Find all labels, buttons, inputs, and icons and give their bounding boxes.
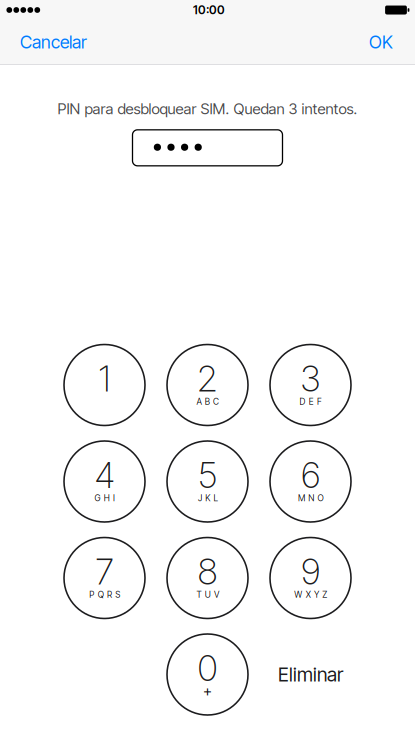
button[interactable]: 5	[167, 441, 248, 522]
staticText: TUV	[196, 589, 219, 600]
staticText: 6	[300, 453, 320, 497]
staticText: 0	[197, 646, 218, 690]
staticText: 1	[98, 357, 111, 400]
staticText: 7	[95, 550, 114, 593]
staticText: ABC	[196, 396, 219, 407]
staticText: OK	[369, 31, 393, 53]
button[interactable]: Cancelar	[0, 20, 107, 64]
staticText: 4	[94, 453, 115, 497]
button[interactable]: Eliminar	[270, 634, 351, 715]
staticText: 5	[197, 453, 217, 497]
button[interactable]: 0	[167, 634, 248, 715]
staticText: GHI	[94, 493, 115, 503]
staticText: +	[203, 682, 212, 700]
button[interactable]: 1	[64, 344, 145, 425]
button[interactable]: 4	[64, 441, 145, 522]
staticText: JKL	[198, 493, 218, 503]
staticText: WXYZ	[294, 589, 327, 600]
button[interactable]: 9	[270, 537, 351, 618]
button[interactable]: 6	[270, 441, 351, 522]
button[interactable]: 2	[167, 344, 248, 425]
staticText: 10:00	[193, 3, 225, 17]
staticText: Cancelar	[20, 31, 87, 53]
staticText: DEF	[299, 396, 322, 407]
button[interactable]: 3	[270, 344, 351, 425]
staticText: PQRS	[89, 589, 120, 600]
button[interactable]: 8	[167, 537, 248, 618]
staticText: 3	[299, 357, 321, 400]
staticText: Eliminar	[278, 663, 343, 686]
staticText: 9	[300, 550, 320, 593]
staticText: 8	[197, 550, 218, 593]
staticText: MNO	[298, 493, 324, 503]
button[interactable]: OK	[347, 20, 415, 64]
button[interactable]: 7	[64, 537, 145, 618]
staticText: PIN para desbloquear SIM. Quedan 3 inten…	[57, 100, 357, 118]
staticText: 2	[196, 357, 218, 400]
